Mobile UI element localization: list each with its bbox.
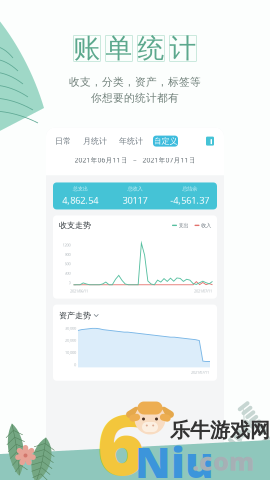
staticText: 支出	[178, 222, 188, 229]
staticText: 2021年06月11日 － 2021年07月11日	[74, 156, 195, 164]
button[interactable]: 月统计	[81, 134, 109, 148]
staticText: 总收入	[127, 185, 142, 192]
staticText: 900	[64, 252, 70, 257]
staticText: 30117	[122, 194, 147, 206]
button[interactable]: Export	[203, 135, 217, 147]
staticText: 30,000	[65, 325, 76, 331]
staticText: 收支，分类，资产，标签等	[69, 75, 201, 88]
staticText: 计	[169, 32, 196, 65]
button[interactable]: 日常	[53, 134, 73, 148]
staticText: 总结余	[182, 185, 197, 192]
staticText: 0	[74, 362, 76, 367]
staticText: 20,000	[65, 338, 76, 343]
staticText: 资产走势	[59, 311, 91, 320]
staticText: .com	[192, 444, 254, 478]
staticText: -4,561.37	[170, 194, 209, 206]
staticText: 2021/07/11	[191, 369, 209, 375]
staticText: 2021/06/11	[70, 288, 88, 294]
staticText: 4,862.54	[62, 194, 98, 206]
staticText: 600	[64, 261, 70, 266]
staticText: 账	[73, 32, 100, 65]
staticText: 收支走势	[59, 220, 91, 230]
staticText: 自定义	[153, 136, 177, 146]
staticText: 300	[64, 270, 70, 276]
staticText: 日常	[55, 136, 71, 146]
staticText: 2021/07/11	[194, 288, 212, 294]
staticText: 单	[105, 32, 132, 65]
staticText: 1200	[62, 242, 70, 248]
staticText: 月统计	[83, 136, 107, 146]
staticText: 10,000	[65, 350, 76, 355]
button[interactable]: 年统计	[117, 134, 145, 148]
staticText: 统	[137, 32, 164, 65]
button[interactable]: 自定义	[153, 136, 178, 147]
staticText: 你想要的统计都有	[91, 91, 179, 105]
staticText: 总支出	[73, 185, 88, 192]
staticText: 6	[97, 388, 145, 480]
staticText: 收入	[201, 222, 211, 229]
staticText: 乐牛游戏网	[170, 418, 270, 443]
staticText: Niu	[135, 433, 214, 480]
staticText: 年统计	[119, 136, 143, 146]
staticText: 0	[68, 280, 70, 285]
